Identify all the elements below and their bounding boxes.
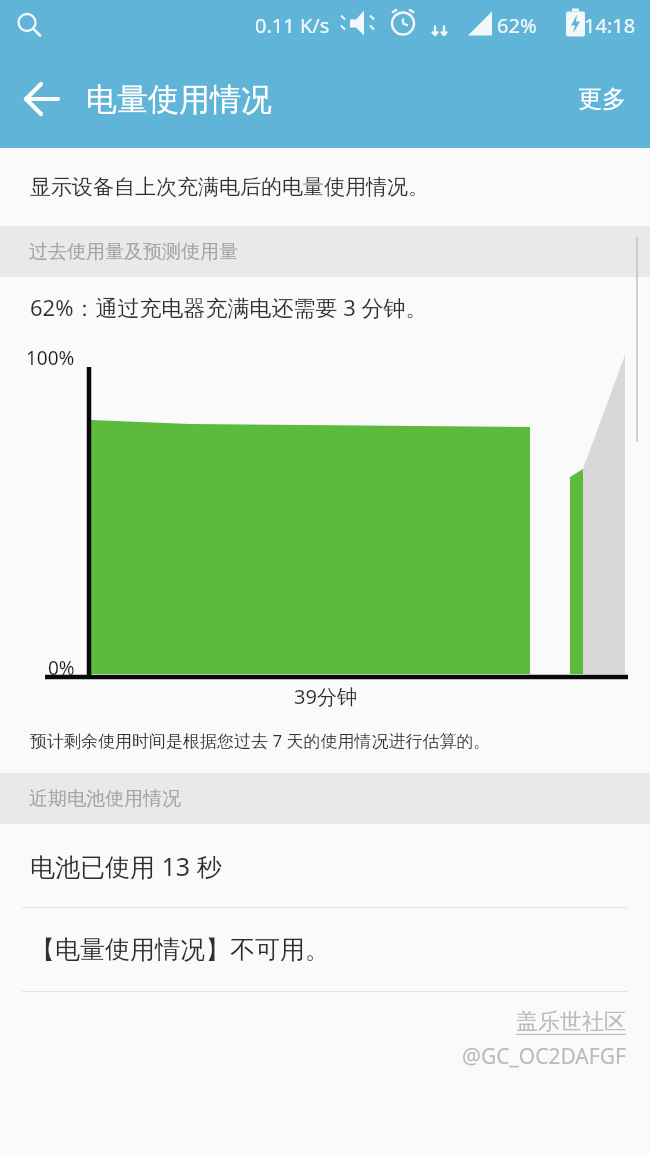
staticText: 14:18 bbox=[584, 12, 636, 39]
staticText: 62% bbox=[497, 12, 537, 39]
button[interactable]: 更多 bbox=[562, 72, 642, 126]
staticText: 电池已使用 13 秒 bbox=[30, 849, 222, 883]
staticText: 39分钟 bbox=[294, 683, 357, 707]
button[interactable]: 【电量使用情况】不可用。 bbox=[0, 908, 650, 991]
staticText: 0% bbox=[48, 655, 75, 681]
staticText: 100% bbox=[26, 345, 75, 371]
staticText: 显示设备自上次充满电后的电量使用情况。 bbox=[30, 174, 429, 200]
button[interactable]: 电池已使用 13 秒 bbox=[0, 824, 650, 907]
staticText: 更多 bbox=[578, 84, 626, 114]
staticText: 近期电池使用情况 bbox=[29, 787, 181, 811]
staticText: 【电量使用情况】不可用。 bbox=[30, 934, 330, 965]
staticText: 0.11 K/s bbox=[255, 12, 330, 39]
staticText: 62%：通过充电器充满电还需要 3 分钟。 bbox=[30, 292, 428, 322]
staticText: 电量使用情况 bbox=[86, 80, 272, 119]
staticText: @GC_OC2DAFGF bbox=[462, 1042, 626, 1071]
staticText: 过去使用量及预测使用量 bbox=[29, 240, 238, 264]
staticText: 盖乐世社区 bbox=[516, 1008, 626, 1036]
button[interactable]: Back bbox=[14, 71, 70, 127]
staticText: 预计剩余使用时间是根据您过去 7 天的使用情况进行估算的。 bbox=[30, 729, 491, 752]
